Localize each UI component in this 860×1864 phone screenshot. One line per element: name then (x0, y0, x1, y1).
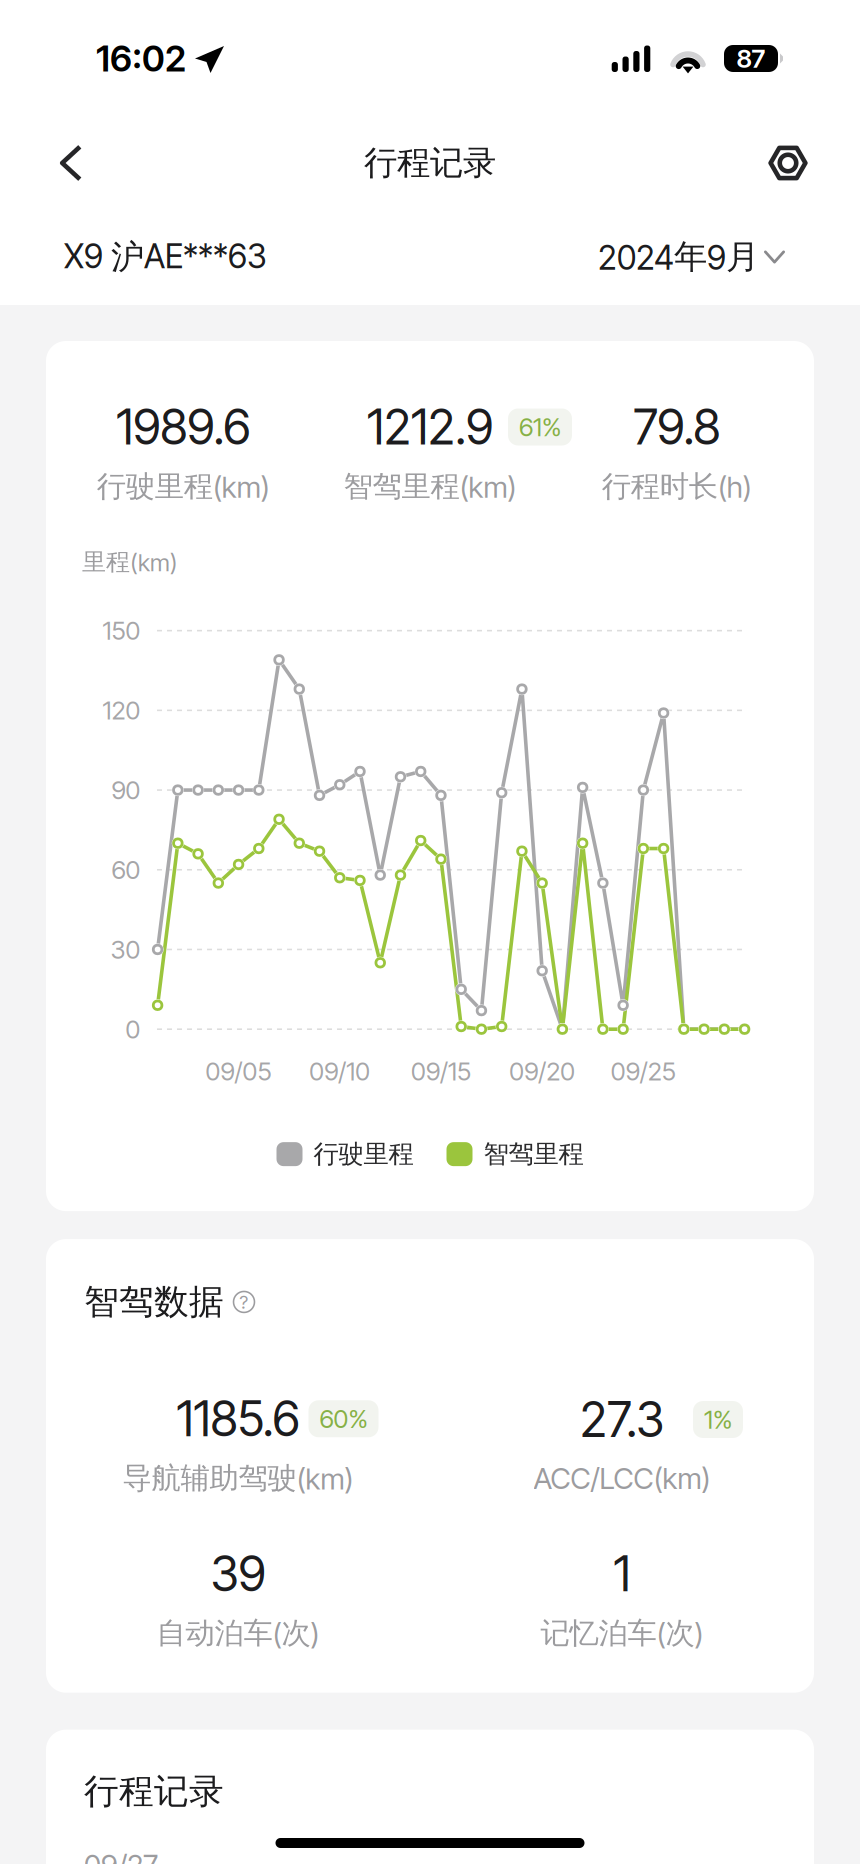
staticText: 行程时长(h) (602, 468, 752, 505)
staticText: 09/27 (84, 1847, 158, 1864)
staticText: 90 (111, 775, 140, 805)
staticText: 行驶里程(km) (97, 468, 270, 505)
staticText: 1 (613, 1545, 630, 1603)
staticText: 09/25 (611, 1056, 676, 1087)
staticText: 09/15 (411, 1056, 471, 1087)
staticText: 09/05 (206, 1056, 272, 1087)
button[interactable]: 2024年9月 (598, 236, 785, 278)
staticText: 09/10 (309, 1056, 370, 1087)
staticText: 60% (319, 1403, 367, 1434)
staticText: 智驾里程(km) (343, 468, 516, 505)
staticText: 智驾数据 (84, 1280, 224, 1324)
staticText: ACC/LCC(km) (533, 1460, 710, 1496)
staticText: 39 (210, 1545, 265, 1603)
staticText: 61% (519, 412, 561, 442)
staticText: 1989.6 (116, 398, 250, 456)
staticText: 自动泊车(次) (156, 1615, 319, 1652)
staticText: 行程记录 (84, 1770, 224, 1813)
staticText: 79.8 (633, 398, 720, 456)
staticText: 2024年9月 (598, 236, 759, 278)
staticText: 120 (102, 695, 140, 726)
staticText: X9 沪AE***63 (64, 236, 267, 278)
staticText: 1185.6 (176, 1390, 299, 1448)
staticText: 60 (111, 854, 140, 885)
staticText: 里程(km) (82, 547, 178, 577)
staticText: 150 (102, 615, 140, 646)
button[interactable]: Settings (751, 126, 825, 200)
staticText: 记忆泊车(次) (540, 1615, 703, 1652)
staticText: 30 (110, 934, 140, 965)
staticText: 1212.9 (367, 398, 493, 456)
staticText: 0 (125, 1014, 140, 1045)
staticText: ? (239, 1291, 248, 1313)
staticText: 1% (704, 1404, 732, 1435)
staticText: 行驶里程 (313, 1138, 413, 1170)
staticText: 87 (736, 43, 765, 74)
button[interactable]: Back (34, 126, 108, 200)
staticText: 行程记录 (364, 142, 496, 184)
staticText: 16:02 (96, 37, 186, 80)
staticText: 27.3 (580, 1390, 664, 1449)
staticText: 智驾里程 (483, 1138, 583, 1170)
staticText: 09/20 (509, 1056, 575, 1087)
staticText: 导航辅助驾驶(km) (122, 1460, 353, 1497)
